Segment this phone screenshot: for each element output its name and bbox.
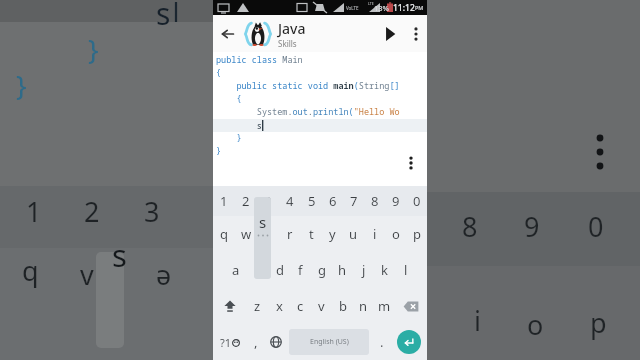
staticText: 13% <box>374 3 389 13</box>
staticText: { <box>216 93 427 106</box>
button[interactable]: y <box>322 216 343 252</box>
staticText: VoLTE <box>346 5 359 11</box>
staticText: r <box>287 225 293 243</box>
button[interactable]: 2 <box>235 186 257 216</box>
button[interactable]: b <box>332 288 353 324</box>
staticText: s <box>112 234 127 276</box>
staticText: { <box>216 67 427 80</box>
button[interactable]: 3 <box>257 186 279 216</box>
staticText: 7 <box>350 192 358 210</box>
staticText: 1 <box>26 193 42 230</box>
button[interactable]: z <box>246 288 268 324</box>
button[interactable]: d <box>269 252 290 288</box>
staticText: a <box>232 261 240 279</box>
staticText: h <box>338 261 347 279</box>
staticText: PM <box>415 4 424 11</box>
button[interactable]: g <box>311 252 332 288</box>
staticText: s <box>216 120 262 132</box>
button[interactable]: 9 <box>385 186 406 216</box>
staticText: d <box>276 261 284 279</box>
button[interactable]: a <box>225 252 247 288</box>
staticText: i <box>373 225 377 243</box>
button[interactable]: k <box>374 252 395 288</box>
button[interactable]: English (US) <box>289 329 369 355</box>
staticText: System.out.println("Hello Wo <box>216 106 427 119</box>
button[interactable]: . <box>372 324 391 360</box>
staticText: g <box>318 261 326 279</box>
staticText: p <box>413 225 421 243</box>
button[interactable]: r <box>279 216 301 252</box>
button[interactable]: w <box>235 216 257 252</box>
button[interactable]: c <box>290 288 311 324</box>
button[interactable]: p <box>406 216 427 252</box>
staticText: 9 <box>524 208 540 245</box>
staticText: Java <box>278 19 306 38</box>
button[interactable]: q <box>213 216 235 252</box>
staticText: } <box>88 30 99 68</box>
staticText: 8 <box>462 208 478 245</box>
button[interactable]: e <box>257 216 279 252</box>
staticText: Skills <box>278 38 297 49</box>
button[interactable]: v <box>311 288 332 324</box>
button[interactable]: Back <box>213 15 243 52</box>
button[interactable]: t <box>301 216 322 252</box>
staticText: x <box>276 297 283 315</box>
button[interactable]: , <box>246 324 265 360</box>
button[interactable]: 8 <box>364 186 385 216</box>
button[interactable]: Shift <box>213 288 246 324</box>
button[interactable]: 5 <box>301 186 322 216</box>
button[interactable]: Enter <box>397 330 421 354</box>
button[interactable]: 0 <box>406 186 427 216</box>
staticText: 11:12 <box>393 2 415 14</box>
staticText: v <box>318 297 325 315</box>
button[interactable]: Run <box>375 15 405 52</box>
staticText: q <box>220 225 228 243</box>
button[interactable]: h <box>332 252 353 288</box>
staticText: c <box>297 297 304 315</box>
staticText: e <box>264 225 272 243</box>
staticText: u <box>349 225 358 243</box>
button[interactable]: Backspace <box>395 288 427 324</box>
staticText: f <box>298 261 303 279</box>
staticText: LTE <box>368 1 374 6</box>
staticText: 4 <box>286 192 294 210</box>
staticText: } <box>16 66 27 104</box>
staticText: p <box>590 304 607 341</box>
button[interactable]: f <box>290 252 311 288</box>
button[interactable]: s <box>247 252 269 288</box>
button[interactable]: l <box>395 252 416 288</box>
button[interactable]: 7 <box>343 186 364 216</box>
button[interactable]: Editor options <box>403 153 419 173</box>
button[interactable]: u <box>343 216 364 252</box>
staticText: 1 <box>220 192 228 210</box>
staticText: z <box>254 297 261 315</box>
staticText: k <box>381 261 388 279</box>
button[interactable]: m <box>374 288 395 324</box>
staticText: , <box>254 333 258 351</box>
staticText: 3 <box>144 193 160 230</box>
staticText: 6 <box>329 192 337 210</box>
staticText: 2 <box>84 193 100 230</box>
button[interactable]: More options <box>405 15 427 52</box>
button[interactable]: o <box>385 216 406 252</box>
staticText: ə <box>156 256 172 293</box>
button[interactable]: n <box>353 288 374 324</box>
staticText: q <box>22 252 39 289</box>
button[interactable]: 6 <box>322 186 343 216</box>
button[interactable]: j <box>353 252 374 288</box>
button[interactable]: i <box>364 216 385 252</box>
button[interactable]: x <box>268 288 290 324</box>
button[interactable]: 1 <box>213 186 235 216</box>
staticText: 3 <box>264 192 272 210</box>
staticText: s <box>259 212 267 232</box>
staticText: y <box>329 225 336 243</box>
staticText: w <box>241 225 252 243</box>
button[interactable]: Change language <box>265 324 286 360</box>
staticText: b <box>339 297 347 315</box>
staticText: v <box>80 256 94 293</box>
button[interactable]: 4 <box>279 186 301 216</box>
button[interactable]: Symbols <box>213 324 246 360</box>
staticText: public static void main(String[] <box>216 80 427 93</box>
staticText: public class Main <box>216 54 427 67</box>
